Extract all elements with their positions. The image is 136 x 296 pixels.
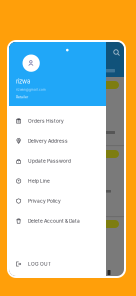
button[interactable]: Delete Account & Data [9,211,106,231]
staticText: Update Password [28,158,71,164]
staticText: Help Line [28,178,50,184]
staticText: LOG OUT [28,261,51,267]
button[interactable]: Help Line [9,171,106,191]
staticText: Delivery Address [28,138,68,144]
button[interactable]: Orders History [9,111,106,131]
staticText: rizwa [16,77,30,85]
button[interactable]: Update Password [9,151,106,171]
staticText: Retailer [16,95,28,99]
button[interactable]: Delivery Address [9,131,106,151]
button[interactable]: LOG OUT [9,254,106,274]
button[interactable]: Privacy Policy [9,191,106,211]
staticText: Privacy Policy [28,198,61,204]
staticText: Delete Account & Data [28,218,80,224]
staticText: rizwan@gmail.com [16,88,46,91]
staticText: Orders History [28,118,64,124]
